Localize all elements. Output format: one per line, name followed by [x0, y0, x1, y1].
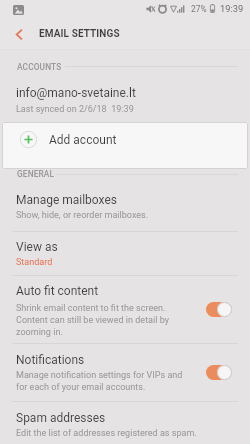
button[interactable]: Toggle Auto fit content: [206, 302, 232, 317]
button[interactable]: Notifications: [0, 344, 250, 400]
staticText: info@mano-svetaine.lt: [16, 86, 136, 100]
staticText: Auto fit content: [16, 284, 99, 298]
staticText: View as: [16, 240, 58, 254]
staticText: Shrink email content to fit the screen. …: [16, 303, 169, 338]
staticText: Last synced on 2/6/18 19:39: [16, 104, 134, 115]
staticText: Standard: [16, 257, 53, 268]
button[interactable]: Auto fit content: [0, 276, 250, 343]
button[interactable]: Toggle Notifications: [206, 365, 232, 380]
staticText: Edit the list of addresses registered as…: [16, 428, 197, 439]
staticText: Manage mailboxes: [16, 193, 117, 207]
staticText: GENERAL: [17, 169, 55, 179]
button[interactable]: Navigate up: [6, 21, 34, 49]
staticText: Manage notification settings for VIPs an…: [16, 370, 183, 393]
staticText: 27%: [191, 4, 207, 14]
button[interactable]: Add account: [2, 122, 248, 169]
staticText: Notifications: [16, 353, 85, 367]
staticText: Spam addresses: [16, 411, 106, 425]
staticText: EMAIL SETTINGS: [39, 28, 120, 40]
staticText: Show, hide, or reorder mailboxes.: [16, 210, 149, 221]
staticText: Add account: [49, 133, 117, 147]
button[interactable]: info@mano-svetaine.lt: [0, 79, 250, 121]
button[interactable]: Manage mailboxes: [0, 186, 250, 231]
staticText: ACCOUNTS: [17, 62, 62, 72]
staticText: 19:39: [220, 3, 244, 14]
button[interactable]: Spam addresses: [0, 402, 250, 444]
button[interactable]: View as: [0, 232, 250, 275]
